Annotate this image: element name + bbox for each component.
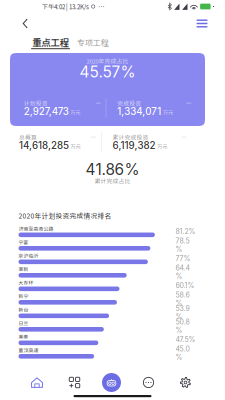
staticText: 47.5%: [175, 335, 195, 344]
staticText: 万元: [71, 143, 81, 150]
button[interactable]: Home: [18, 372, 56, 393]
staticText: 累计完成占比: [94, 177, 130, 185]
staticText: 2,927,473: [24, 105, 69, 117]
staticText: 宁宴: [18, 238, 28, 245]
button[interactable]: Apps: [56, 372, 93, 393]
staticText: 京沪临沂: [18, 252, 38, 259]
staticText: 济南至高青公路: [18, 225, 53, 232]
staticText: 64.4%: [175, 264, 189, 280]
staticText: 1,334,071: [117, 105, 161, 117]
staticText: 董汶高速: [18, 346, 38, 353]
staticText: 莱泰: [18, 333, 28, 340]
button[interactable]: Menu: [189, 13, 215, 34]
staticText: 万元: [157, 143, 167, 150]
staticText: 万元: [70, 109, 80, 116]
staticText: 41.86%: [85, 160, 139, 179]
staticText: 6,119,382: [113, 139, 156, 151]
button[interactable]: Settings: [167, 372, 204, 393]
staticText: 2020年计划投资完成情况排名: [18, 211, 111, 220]
staticText: 莱新: [18, 265, 28, 272]
staticText: 计划投资: [24, 99, 48, 107]
staticText: 总概算: [19, 133, 37, 141]
staticText: 重点工程: [32, 35, 68, 49]
staticText: 45.0%: [175, 345, 189, 361]
staticText: 58.6%: [175, 291, 189, 307]
staticText: 大东环: [18, 279, 33, 286]
staticText: 78.5%: [175, 237, 189, 253]
button[interactable]: Messages: [130, 372, 167, 393]
staticText: 新宁: [18, 292, 28, 299]
staticText: ⋯: [98, 3, 105, 10]
staticText: 日兰: [18, 319, 28, 326]
staticText: 下午4:02 | 13.2K/s: [42, 2, 89, 11]
staticText: 53.9%: [175, 304, 189, 321]
staticText: 45.57%: [79, 63, 135, 81]
button[interactable]: Assistant: [93, 372, 130, 393]
staticText: 14,618,285: [19, 139, 69, 151]
staticText: 万元: [163, 109, 173, 116]
button[interactable]: 专项工程: [76, 37, 110, 49]
button[interactable]: 重点工程: [31, 37, 70, 49]
staticText: 专项工程: [77, 36, 109, 48]
staticText: 新台: [18, 306, 28, 313]
staticText: 完成投资: [117, 99, 141, 107]
staticText: 60.1%: [175, 281, 194, 290]
staticText: 50.8%: [175, 318, 189, 334]
staticText: 2020年完成占比: [86, 57, 128, 65]
staticText: 累计完成投资: [113, 133, 149, 141]
button[interactable]: Back: [16, 13, 34, 34]
staticText: 77%: [175, 254, 190, 263]
staticText: 81.2%: [175, 227, 195, 236]
